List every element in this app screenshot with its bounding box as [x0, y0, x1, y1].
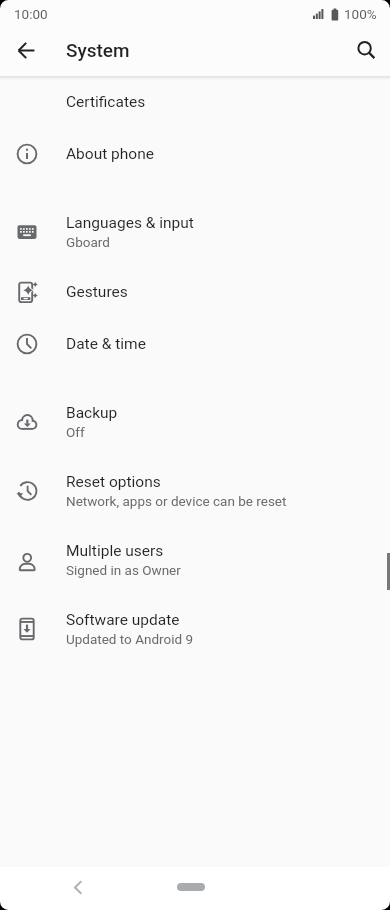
staticText: Signed in as Owner	[66, 562, 181, 578]
button[interactable]: Date & time	[0, 318, 390, 370]
staticText: Reset options	[66, 473, 161, 491]
staticText: 100%	[344, 6, 377, 22]
staticText: 10:00	[14, 6, 48, 22]
button[interactable]: Gestures	[0, 266, 390, 318]
staticText: Certificates	[66, 93, 146, 111]
button[interactable]: Software update	[0, 594, 390, 663]
button[interactable]: Multiple users	[0, 525, 390, 594]
staticText: Gestures	[66, 283, 128, 301]
button[interactable]: About phone	[0, 128, 390, 180]
staticText: Software update	[66, 611, 180, 629]
button[interactable]	[60, 869, 96, 905]
button[interactable]: Reset options	[0, 456, 390, 525]
staticText: Date & time	[66, 335, 146, 353]
button[interactable]: Backup	[0, 387, 390, 456]
button[interactable]	[161, 872, 221, 902]
staticText: Multiple users	[66, 542, 164, 560]
button[interactable]	[8, 32, 44, 68]
staticText: Backup	[66, 404, 118, 422]
staticText: Gboard	[66, 234, 110, 250]
staticText: About phone	[66, 145, 154, 163]
button[interactable]: Certificates	[0, 76, 390, 128]
button[interactable]	[348, 32, 384, 68]
button[interactable]: Languages & input	[0, 197, 390, 266]
staticText: Network, apps or device can be reset	[66, 493, 287, 509]
staticText: Updated to Android 9	[66, 631, 194, 647]
staticText: System	[66, 39, 130, 61]
staticText: Off	[66, 424, 85, 440]
staticText: Languages & input	[66, 214, 194, 232]
